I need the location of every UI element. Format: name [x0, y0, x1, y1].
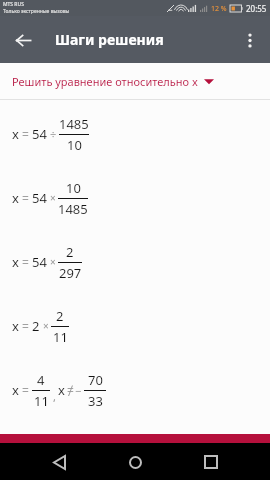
staticText: =: [22, 190, 29, 206]
staticText: 2: [66, 243, 74, 261]
button[interactable]: x: [0, 172, 270, 224]
staticText: 54: [32, 125, 47, 143]
button[interactable]: Recent apps: [194, 445, 228, 479]
staticText: =: [22, 126, 29, 142]
staticText: Только экстренные вызовы: [3, 8, 70, 15]
staticText: 4: [37, 371, 45, 389]
staticText: 70: [88, 371, 103, 389]
staticText: ×: [50, 255, 56, 269]
staticText: ÷: [50, 127, 57, 142]
staticText: Шаги решения: [55, 30, 164, 49]
staticText: 1485: [58, 200, 88, 218]
staticText: x: [12, 253, 19, 271]
staticText: 54: [32, 253, 47, 271]
button[interactable]: More options: [234, 24, 266, 56]
staticText: =: [22, 318, 29, 334]
staticText: 12 %: [211, 4, 227, 14]
button[interactable]: x: [0, 108, 270, 160]
button[interactable]: x: [0, 364, 270, 416]
staticText: Решить уравнение относительно x: [12, 74, 198, 89]
staticText: 20:55: [246, 3, 267, 14]
staticText: 2: [32, 317, 40, 335]
button[interactable]: Back: [6, 23, 40, 57]
staticText: x: [12, 381, 19, 399]
button[interactable]: Решить уравнение относительно x: [0, 63, 270, 99]
staticText: 33: [88, 392, 103, 410]
staticText: x: [12, 189, 19, 207]
staticText: 11: [53, 328, 68, 346]
staticText: ×: [50, 191, 56, 205]
staticText: x: [12, 125, 19, 143]
button[interactable]: Home: [118, 445, 152, 479]
staticText: 2: [56, 307, 64, 325]
staticText: ,: [53, 389, 56, 404]
staticText: MTS RUS: [3, 1, 24, 8]
staticText: 297: [59, 264, 82, 282]
staticText: =: [22, 254, 29, 270]
staticText: ≠: [67, 382, 74, 398]
staticText: −: [75, 383, 82, 398]
button[interactable]: x: [0, 236, 270, 288]
staticText: =: [22, 382, 29, 398]
staticText: 1485: [59, 115, 89, 133]
staticText: 10: [67, 136, 82, 154]
button[interactable]: Back: [42, 445, 76, 479]
staticText: 11: [34, 392, 49, 410]
button[interactable]: x: [0, 300, 270, 352]
staticText: 54: [32, 189, 47, 207]
staticText: ×: [43, 319, 49, 333]
staticText: 10: [66, 179, 81, 197]
staticText: x: [12, 317, 19, 335]
staticText: x: [58, 381, 65, 399]
